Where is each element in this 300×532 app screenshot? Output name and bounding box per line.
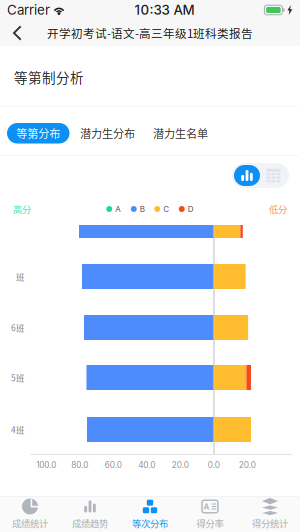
staticText: 5班 [11, 371, 24, 384]
staticText: 20.0 [172, 460, 189, 470]
button[interactable]: Table view [260, 165, 287, 186]
staticText: 开学初考试-语文-高三年级1班科类报告 [47, 25, 253, 41]
staticText: 高分 [13, 202, 31, 216]
staticText: 成绩趋势 [72, 516, 108, 530]
staticText: 10:33 AM [134, 2, 194, 18]
button[interactable]: 得分统计 [240, 496, 300, 532]
staticText: 等次分布 [132, 516, 168, 530]
staticText: 40.0 [138, 460, 155, 470]
staticText: 潜力生名单 [153, 125, 208, 141]
staticText: 100.0 [36, 460, 56, 470]
staticText: Carrier [7, 2, 50, 18]
staticText: 等第分布 [16, 125, 60, 141]
staticText: 20.0 [239, 460, 256, 470]
staticText: A [115, 204, 121, 214]
staticText: D [188, 204, 194, 214]
staticText: 得分统计 [252, 516, 288, 530]
button[interactable]: 等次分布 [120, 496, 180, 532]
staticText: 4班 [11, 423, 24, 436]
staticText: A [203, 502, 209, 511]
staticText: 60.0 [105, 460, 122, 470]
staticText: 得分率 [196, 516, 223, 530]
button[interactable]: Bar chart view [234, 165, 260, 186]
button[interactable]: 潜力生分布 [77, 123, 137, 143]
staticText: 等第制分析 [14, 67, 84, 87]
button[interactable]: 潜力生名单 [150, 123, 210, 143]
staticText: 低分 [269, 202, 287, 216]
staticText: C [163, 204, 169, 214]
staticText: 班 [16, 270, 24, 283]
staticText: 潜力生分布 [80, 125, 135, 141]
button[interactable]: 成绩统计 [0, 496, 60, 532]
staticText: 6班 [11, 321, 24, 334]
button[interactable]: 成绩趋势 [60, 496, 120, 532]
button[interactable]: 等第分布 [7, 123, 69, 143]
button[interactable]: A [180, 496, 240, 532]
button[interactable]: Back [0, 20, 34, 46]
staticText: B [140, 204, 145, 214]
staticText: 80.0 [71, 460, 88, 470]
staticText: 0.0 [208, 460, 220, 470]
staticText: 成绩统计 [12, 516, 48, 530]
